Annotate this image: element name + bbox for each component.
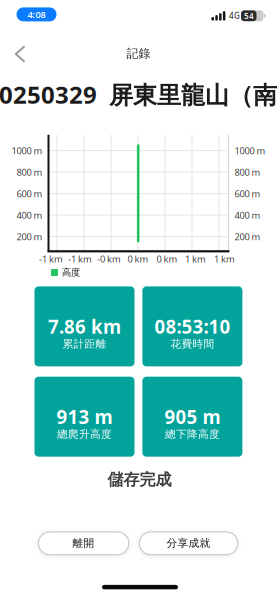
- button[interactable]: 離開: [38, 531, 129, 555]
- staticText: 800 m: [16, 166, 42, 178]
- staticText: 累計距離: [62, 337, 106, 350]
- staticText: 4G: [229, 10, 240, 21]
- staticText: 400 m: [16, 209, 42, 221]
- staticText: 分享成就: [166, 537, 210, 550]
- staticText: 800 m: [234, 166, 260, 178]
- staticText: 1 km: [185, 253, 206, 265]
- staticText: 54: [244, 11, 254, 21]
- staticText: 花費時間: [170, 337, 214, 350]
- staticText: 記錄: [126, 46, 150, 61]
- button[interactable]: 分享成就: [139, 531, 238, 555]
- staticText: 儲存完成: [107, 470, 171, 490]
- staticText: 200 m: [234, 230, 260, 243]
- staticText: 1000 m: [234, 144, 265, 157]
- staticText: 7.86 km: [48, 314, 121, 339]
- staticText: 0250329 屏東里龍山（南登山口）: [0, 79, 277, 110]
- staticText: 高度: [62, 267, 80, 278]
- staticText: 400 m: [234, 209, 260, 221]
- staticText: 600 m: [16, 187, 42, 200]
- staticText: 905 m: [164, 404, 220, 429]
- staticText: 4:08: [27, 8, 45, 21]
- staticText: -1 km: [39, 253, 63, 265]
- staticText: 08:53:10: [154, 314, 230, 339]
- button[interactable]: Back: [7, 40, 31, 68]
- staticText: 總爬升高度: [57, 428, 112, 441]
- staticText: -0 km: [97, 253, 121, 265]
- staticText: 913 m: [56, 404, 112, 429]
- staticText: 1000 m: [11, 144, 42, 157]
- staticText: -1 km: [68, 253, 92, 265]
- staticText: 0 km: [156, 253, 177, 265]
- staticText: 1 km: [214, 253, 235, 265]
- staticText: 600 m: [234, 187, 260, 200]
- staticText: 200 m: [16, 230, 42, 243]
- staticText: 總下降高度: [165, 428, 220, 441]
- staticText: 離開: [73, 537, 95, 550]
- staticText: 0 km: [127, 253, 148, 265]
